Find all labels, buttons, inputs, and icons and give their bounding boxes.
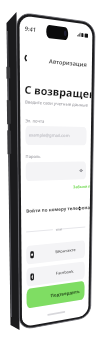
button[interactable]: Авторизация login screen phone mockup — [0, 0, 99, 342]
